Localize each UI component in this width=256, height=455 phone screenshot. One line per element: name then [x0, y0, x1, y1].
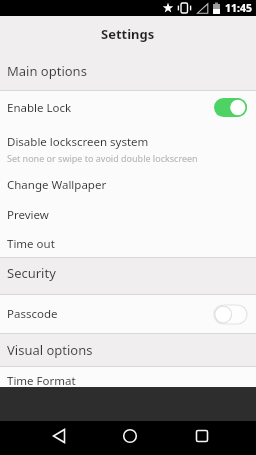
button[interactable] [0, 421, 86, 455]
button[interactable]: Passcode [0, 295, 256, 333]
staticText: Settings [101, 25, 155, 43]
staticText: Change Wallpaper [7, 177, 107, 193]
staticText: Security [7, 264, 56, 282]
button[interactable]: Preview [0, 200, 256, 230]
button[interactable]: Time out [0, 230, 256, 257]
staticText: Preview [7, 207, 49, 223]
staticText: Main options [7, 62, 87, 80]
button[interactable]: Enable Lock [0, 91, 256, 124]
button[interactable]: Disable lockscreen system [0, 124, 256, 170]
staticText: Set none or swipe to avoid double locksc… [7, 152, 198, 164]
button[interactable]: Time Format [0, 367, 256, 387]
staticText: Time out [7, 236, 55, 252]
staticText: Passcode [7, 306, 58, 322]
staticText: Enable Lock [7, 100, 72, 116]
staticText: Disable lockscreen system [7, 134, 149, 150]
button[interactable]: Change Wallpaper [0, 170, 256, 200]
staticText: 11:45 [225, 1, 252, 15]
staticText: Visual options [7, 341, 93, 359]
button[interactable] [86, 421, 171, 455]
button[interactable] [171, 421, 256, 455]
staticText: Time Format [7, 373, 76, 387]
